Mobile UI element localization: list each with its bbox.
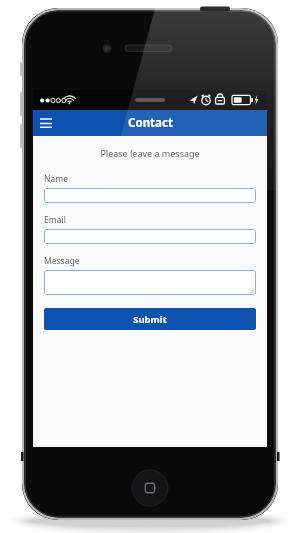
staticText: Name [44, 173, 256, 185]
button[interactable] [44, 229, 256, 244]
button[interactable]: Home [132, 470, 168, 506]
button[interactable]: Submit [44, 308, 256, 330]
button[interactable] [44, 270, 256, 295]
staticText: Please leave a message [44, 147, 256, 159]
button[interactable] [44, 188, 256, 203]
staticText: Contact [128, 115, 173, 131]
button[interactable]: Open navigation menu [33, 110, 59, 136]
staticText: Email [44, 214, 256, 226]
staticText: Message [44, 255, 256, 267]
staticText: Submit [133, 313, 167, 326]
